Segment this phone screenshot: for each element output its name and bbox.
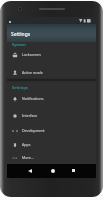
button[interactable]: Settings	[7, 83, 96, 91]
staticText: Notifications	[22, 96, 44, 101]
staticText: More...	[22, 155, 34, 160]
button[interactable]: Recent apps	[69, 166, 78, 175]
staticText: Active mode	[22, 70, 43, 75]
button[interactable]: More...	[7, 151, 96, 164]
button[interactable]: Development	[7, 124, 96, 137]
button[interactable]: Settings	[7, 24, 96, 42]
staticText: Apps	[22, 142, 31, 147]
button[interactable]: Lockscreen	[7, 48, 96, 61]
staticText: Development	[22, 128, 45, 133]
staticText: Interface	[22, 113, 38, 118]
button[interactable]: Back	[25, 166, 34, 175]
button[interactable]: Home	[48, 166, 57, 175]
button[interactable]: System	[7, 40, 96, 48]
button[interactable]: Interface	[7, 109, 96, 122]
staticText: Lockscreen	[22, 52, 41, 57]
staticText: Settings	[12, 85, 28, 90]
button[interactable]: Apps	[7, 138, 96, 151]
button[interactable]: Notifications	[7, 92, 96, 105]
staticText: Settings	[11, 31, 31, 38]
button[interactable]: Active mode	[7, 66, 96, 79]
staticText: System	[12, 42, 26, 47]
